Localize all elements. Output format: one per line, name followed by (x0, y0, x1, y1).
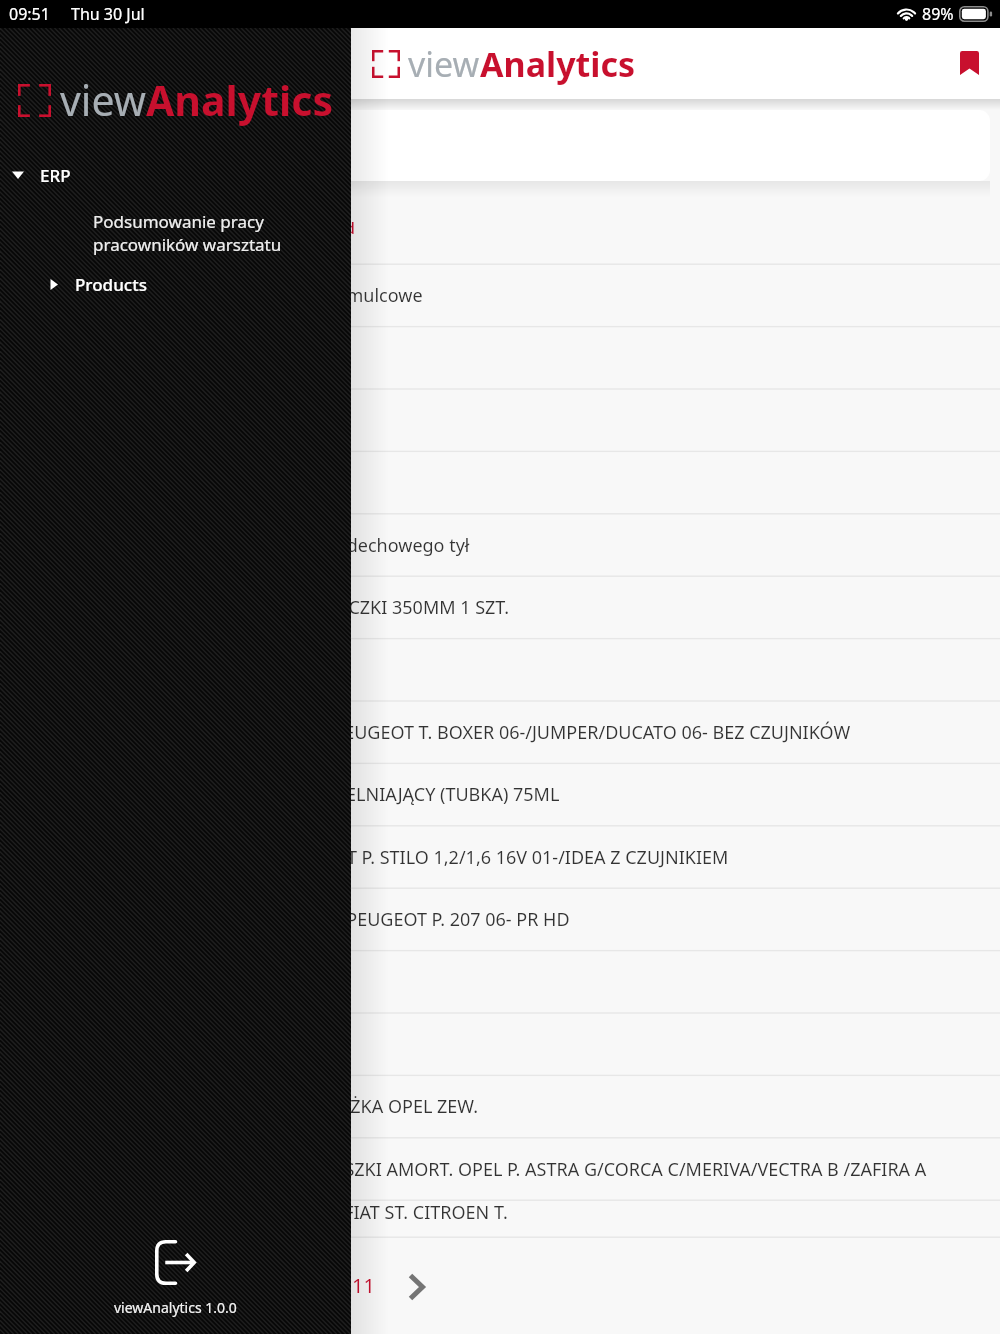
button[interactable] (0, 326, 1000, 388)
staticText: Amortyzator wydechowego tył (213, 533, 470, 558)
staticText: 9 (265, 1272, 277, 1299)
staticText: 10 (306, 1272, 329, 1299)
staticText: Podsumowanie pracy pracowników warsztatu (93, 210, 282, 256)
button[interactable]: WYCIERACZKI 350MM 1 SZT. (0, 576, 1000, 638)
button[interactable]: KLOCKI HAM. PEUGEOT P. 207 06- PR HD (0, 888, 1000, 950)
button[interactable]: 10 (294, 1258, 340, 1312)
staticText: view (60, 72, 146, 128)
button[interactable]: Podsumowanie pracy pracowników warsztatu (0, 210, 351, 256)
staticText: Klocki hamulcowe (271, 283, 423, 308)
staticText: viewAnalytics 1.0.0 (114, 1298, 237, 1317)
button[interactable]: ZESTAW PODUSZKI AMORT. OPEL P. ASTRA G/C… (0, 1138, 1000, 1200)
button[interactable]: Klocki hamulcowe (0, 264, 1000, 326)
button[interactable]: ŁOŻYSKO KOŁA PRZ. FIAT ST. CITROEN T. (0, 1200, 1000, 1237)
button[interactable]: KLOCKI HAM. FIAT P. STILO 1,2/1,6 16V 01… (0, 826, 1000, 888)
button[interactable]: KLEJ USZCZELNIAJĄCY (TUBKA) 75ML (0, 763, 1000, 825)
staticText: KLOCKI HAM. PEUGEOT T. BOXER 06-/JUMPER/… (215, 720, 851, 745)
staticText: view (408, 41, 480, 87)
button[interactable]: KOŃCÓWKA DRĄŻKA OPEL ZEW. (0, 1075, 1000, 1137)
button[interactable] (0, 1013, 1000, 1075)
button[interactable]: 9 (248, 1258, 294, 1312)
staticText: WYCIERACZKI 350MM 1 SZT. (272, 595, 510, 620)
staticText: KLOCKI HAM. FIAT P. STILO 1,2/1,6 16V 01… (203, 845, 729, 870)
staticText: 09:51 (9, 3, 50, 25)
button[interactable]: ERP (0, 154, 351, 196)
staticText: Thu 30 Jul (71, 3, 145, 25)
button[interactable] (0, 950, 1000, 1012)
staticText: 11 (352, 1272, 375, 1299)
staticText: Kod (325, 217, 355, 239)
staticText: Analytics (480, 41, 636, 87)
button[interactable]: Bookmark (940, 35, 998, 93)
button[interactable]: Next page (386, 1258, 446, 1312)
button[interactable] (0, 110, 990, 181)
button[interactable]: 11 (340, 1258, 386, 1312)
button[interactable] (0, 451, 1000, 513)
staticText: ERP (40, 164, 71, 187)
button[interactable]: Log out (0, 1240, 351, 1317)
button[interactable] (0, 389, 1000, 451)
staticText: ZESTAW PODUSZKI AMORT. OPEL P. ASTRA G/C… (222, 1157, 927, 1182)
staticText: KLEJ USZCZELNIAJĄCY (TUBKA) 75ML (250, 782, 560, 807)
staticText: KLOCKI HAM. PEUGEOT P. 207 06- PR HD (228, 907, 570, 932)
staticText: Products (75, 273, 147, 296)
button[interactable]: Products (0, 266, 351, 302)
staticText: KOŃCÓWKA DRĄŻKA OPEL ZEW. (207, 1094, 478, 1119)
staticText: Analytics (146, 72, 334, 128)
button[interactable]: KLOCKI HAM. PEUGEOT T. BOXER 06-/JUMPER/… (0, 701, 1000, 763)
button[interactable] (0, 638, 1000, 700)
staticText: ŁOŻYSKO KOŁA PRZ. FIAT ST. CITROEN T. (169, 1200, 508, 1225)
button[interactable]: Amortyzator wydechowego tył (0, 514, 1000, 576)
staticText: 89% (922, 3, 954, 25)
